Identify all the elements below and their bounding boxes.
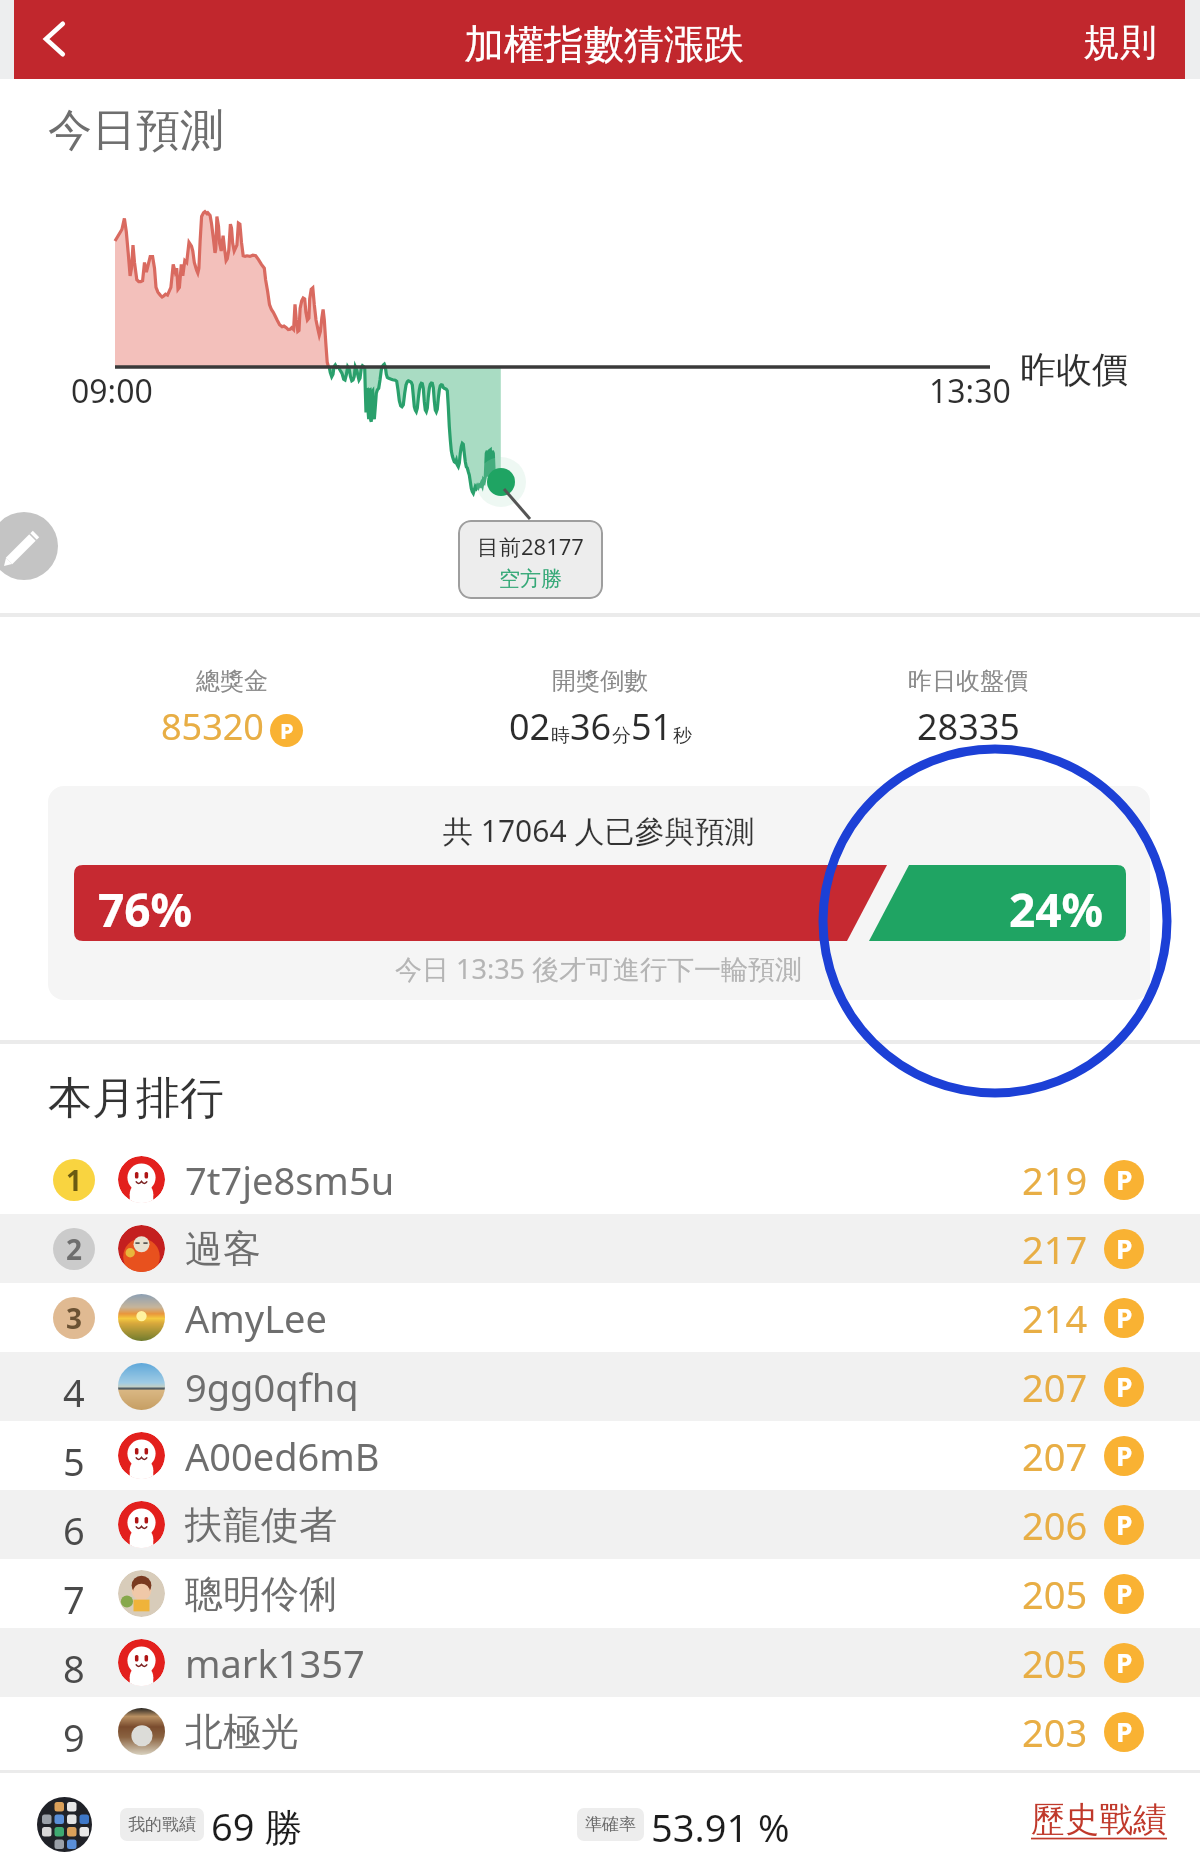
staticText: 24% xyxy=(1009,878,1104,941)
staticText: 203 xyxy=(1022,1706,1088,1758)
button[interactable]: 1 xyxy=(0,1145,1200,1214)
staticText: 規則 xyxy=(1083,19,1157,66)
staticText: P xyxy=(1116,1714,1133,1750)
staticText: P xyxy=(1116,1300,1133,1336)
staticText: 本月排行 xyxy=(48,1071,224,1126)
staticText: 5 xyxy=(63,1435,85,1477)
button[interactable]: 2 xyxy=(0,1214,1200,1283)
staticText: 昨收價 xyxy=(1020,347,1128,392)
staticText: 時 xyxy=(551,724,570,748)
staticText: 今日 13:35 後才可進行下一輪預測 xyxy=(395,950,803,987)
staticText: 昨日收盤價 xyxy=(908,666,1028,696)
staticText: AmyLee xyxy=(185,1292,327,1344)
button[interactable]: 6 xyxy=(0,1490,1200,1559)
staticText: 8 xyxy=(63,1642,85,1684)
button[interactable]: 3 xyxy=(0,1283,1200,1352)
staticText: 13:30 xyxy=(929,369,1011,413)
staticText: 76% xyxy=(98,878,193,941)
staticText: 36 xyxy=(570,702,612,751)
staticText: P xyxy=(1116,1369,1133,1405)
staticText: mark1357 xyxy=(185,1637,365,1689)
staticText: 219 xyxy=(1022,1154,1088,1206)
staticText: 分 xyxy=(612,724,631,748)
staticText: 9gg0qfhq xyxy=(185,1361,359,1413)
staticText: 69 勝 xyxy=(211,1800,303,1852)
staticText: P xyxy=(1116,1162,1133,1198)
staticText: 準確率 xyxy=(585,1814,636,1835)
button[interactable]: 7 xyxy=(0,1559,1200,1628)
staticText: 歷史戰績 xyxy=(1031,1798,1167,1841)
staticText: P xyxy=(1116,1645,1133,1681)
staticText: 扶龍使者 xyxy=(185,1501,337,1549)
staticText: 28335 xyxy=(917,702,1020,751)
staticText: A00ed6mB xyxy=(185,1430,380,1482)
staticText: P xyxy=(1116,1438,1133,1474)
staticText: 9 xyxy=(63,1711,85,1753)
staticText: 53.91 % xyxy=(651,1801,790,1853)
staticText: 205 xyxy=(1022,1568,1088,1620)
staticText: 聰明伶俐 xyxy=(185,1570,337,1618)
staticText: 09:00 xyxy=(71,369,153,413)
staticText: 7t7je8sm5u xyxy=(185,1154,395,1206)
staticText: 206 xyxy=(1022,1499,1088,1551)
staticText: P xyxy=(1116,1231,1133,1267)
staticText: P xyxy=(280,716,294,746)
staticText: 開獎倒數 xyxy=(552,666,648,696)
staticText: 加權指數猜漲跌 xyxy=(464,19,744,69)
staticText: 51 xyxy=(631,702,673,751)
staticText: 02 xyxy=(509,702,551,751)
staticText: 總獎金 xyxy=(196,666,268,696)
button[interactable]: 4 xyxy=(0,1352,1200,1421)
staticText: 85320 xyxy=(161,702,264,751)
staticText: 6 xyxy=(63,1504,85,1546)
staticText: 205 xyxy=(1022,1637,1088,1689)
staticText: 過客 xyxy=(185,1225,261,1273)
staticText: 207 xyxy=(1022,1361,1088,1413)
button[interactable]: 5 xyxy=(0,1421,1200,1490)
staticText: P xyxy=(1116,1576,1133,1612)
staticText: 4 xyxy=(63,1366,85,1408)
staticText: 目前28177 xyxy=(477,531,584,561)
staticText: 207 xyxy=(1022,1430,1088,1482)
button[interactable]: Edit prediction xyxy=(0,512,58,580)
staticText: 214 xyxy=(1022,1292,1088,1344)
staticText: 北極光 xyxy=(185,1708,299,1756)
button[interactable]: 8 xyxy=(0,1628,1200,1697)
staticText: 217 xyxy=(1022,1223,1088,1275)
staticText: 7 xyxy=(63,1573,85,1615)
staticText: 3 xyxy=(66,1299,83,1337)
button[interactable]: Back xyxy=(22,7,86,71)
button[interactable]: 歷史戰績 xyxy=(1031,1798,1167,1841)
staticText: 空方勝 xyxy=(499,566,562,592)
button[interactable]: 9 xyxy=(0,1697,1200,1766)
staticText: 今日預測 xyxy=(48,103,224,158)
staticText: P xyxy=(1116,1507,1133,1543)
staticText: 秒 xyxy=(673,724,692,748)
button[interactable]: My profile xyxy=(37,1797,92,1852)
staticText: 2 xyxy=(66,1230,83,1268)
staticText: 共 17064 人已參與預測 xyxy=(443,810,755,851)
staticText: 我的戰績 xyxy=(128,1814,196,1835)
button[interactable]: 規則 xyxy=(1069,5,1171,80)
staticText: 1 xyxy=(66,1161,83,1199)
